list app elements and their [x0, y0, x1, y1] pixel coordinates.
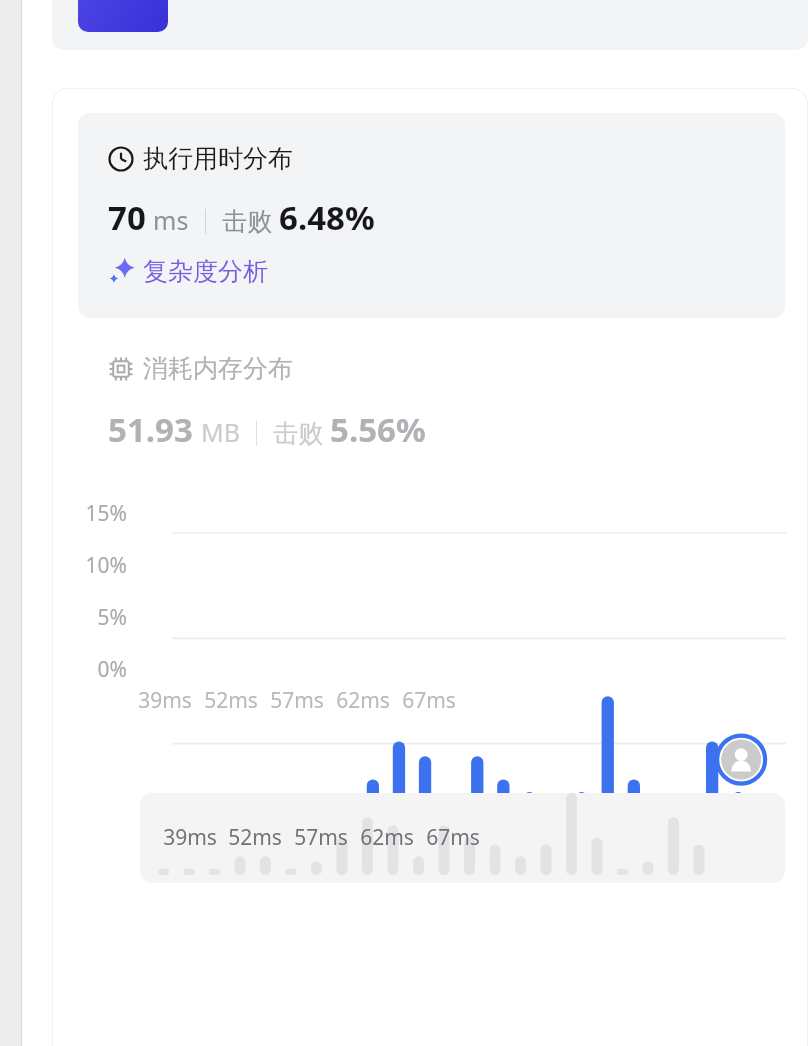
staticText: 击败 — [222, 206, 272, 237]
button[interactable]: 消耗内存分布 — [108, 353, 293, 384]
staticText: 52ms — [220, 823, 290, 852]
staticText: 击败 — [273, 418, 323, 449]
staticText: 0% — [82, 655, 127, 684]
staticText: 消耗内存分布 — [143, 353, 293, 384]
staticText: MB — [201, 415, 240, 449]
staticText: 15% — [82, 499, 127, 528]
button[interactable]: 执行用时分布 — [78, 113, 785, 318]
staticText: 39ms — [130, 686, 200, 715]
staticText: 57ms — [262, 686, 332, 715]
staticText: 51.93 — [108, 407, 193, 452]
staticText: 执行用时分布 — [143, 143, 293, 174]
staticText: 70 — [108, 195, 146, 240]
staticText: 5% — [82, 603, 127, 632]
staticText: ms — [153, 203, 189, 237]
button[interactable]: 本 LeetBook 结合实际项目案例来讲解… — [52, 0, 808, 50]
staticText: 67ms — [394, 686, 464, 715]
button[interactable]: Chart range scrubber — [140, 793, 785, 883]
staticText: 10% — [82, 551, 127, 580]
staticText: 39ms — [155, 823, 225, 852]
staticText: 57ms — [286, 823, 356, 852]
button[interactable]: 复杂度分析 — [108, 256, 268, 287]
staticText: 6.48% — [279, 195, 375, 240]
staticText: 52ms — [196, 686, 266, 715]
staticText: 62ms — [352, 823, 422, 852]
staticText: 67ms — [418, 823, 488, 852]
staticText: 5.56% — [330, 407, 426, 452]
staticText: 复杂度分析 — [143, 256, 268, 287]
staticText: 62ms — [328, 686, 398, 715]
